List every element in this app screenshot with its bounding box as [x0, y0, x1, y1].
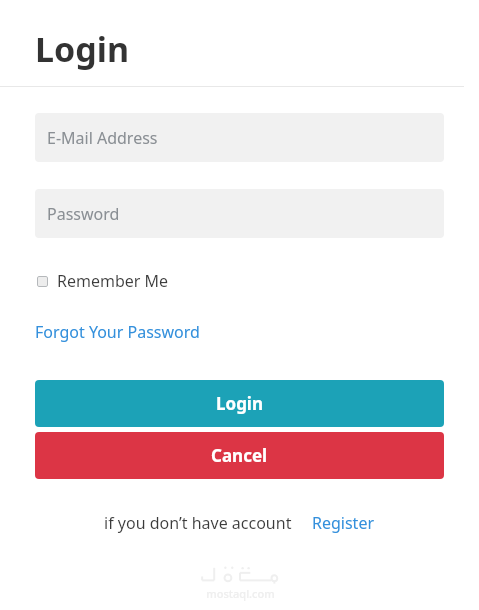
staticText: if you don’t have account [104, 512, 292, 534]
staticText: Login [35, 26, 130, 72]
staticText: Remember Me [57, 270, 169, 292]
staticText: Cancel [211, 444, 268, 467]
staticText: Register [312, 512, 375, 534]
staticText: Forgot Your Password [35, 321, 200, 343]
staticText: mostaql.com [206, 586, 275, 601]
staticText: E-Mail Address [47, 127, 158, 149]
button[interactable]: Forgot Your Password [35, 321, 200, 343]
button[interactable]: E-Mail Address [35, 113, 444, 162]
staticText: Login [216, 392, 264, 415]
button[interactable]: Cancel [35, 432, 444, 479]
other: mostaql watermark [197, 566, 283, 584]
staticText: Password [47, 203, 120, 225]
button[interactable]: Password [35, 189, 444, 238]
button[interactable]: Register [312, 512, 375, 534]
button[interactable]: Remember Me [35, 268, 171, 294]
button[interactable]: Login [35, 380, 444, 427]
